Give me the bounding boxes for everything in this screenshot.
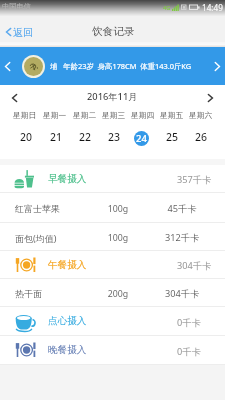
staticText: 22 bbox=[79, 130, 92, 144]
staticText: 2016年11月 bbox=[87, 90, 138, 103]
staticText: 饮食记录 bbox=[92, 25, 135, 38]
button[interactable]: 24 bbox=[128, 126, 157, 159]
staticText: 24 bbox=[136, 132, 147, 145]
button[interactable]: 21 bbox=[40, 126, 70, 159]
staticText: 热干面 bbox=[15, 288, 42, 299]
staticText: 星期一 bbox=[43, 111, 67, 121]
staticText: 0千卡 bbox=[177, 345, 201, 358]
staticText: 26 bbox=[195, 130, 208, 144]
staticText: 200g bbox=[97, 288, 139, 300]
staticText: 304千卡 bbox=[157, 287, 207, 300]
staticText: 午餐摄入 bbox=[48, 259, 87, 271]
button[interactable]: 26 bbox=[186, 126, 215, 159]
staticText: 0千卡 bbox=[177, 316, 201, 329]
button[interactable]: 上个月 bbox=[7, 91, 21, 105]
staticText: 100g bbox=[97, 203, 139, 215]
staticText: 20 bbox=[20, 130, 33, 144]
staticText: 星期二 bbox=[73, 111, 97, 121]
button[interactable]: 点心摄入 bbox=[0, 307, 225, 335]
button[interactable]: 22 bbox=[70, 126, 99, 159]
staticText: 100g bbox=[97, 232, 139, 244]
button[interactable]: 红富士苹果 bbox=[0, 193, 225, 222]
staticText: 星期三 bbox=[102, 111, 126, 121]
staticText: 45千卡 bbox=[157, 202, 207, 215]
staticText: 21 bbox=[50, 130, 63, 144]
button[interactable]: 23 bbox=[99, 126, 128, 159]
staticText: 埔 年龄23岁 身高178CM 体重143.0斤KG bbox=[50, 61, 192, 71]
button[interactable]: 下个月 bbox=[203, 91, 217, 105]
staticText: 星期日 bbox=[13, 111, 37, 121]
staticText: 晚餐摄入 bbox=[48, 344, 87, 356]
button[interactable]: 面包(均值) bbox=[0, 223, 225, 250]
button[interactable]: 午餐摄入 bbox=[0, 251, 225, 278]
button[interactable]: 返回 bbox=[0, 19, 41, 45]
button[interactable]: 晚餐摄入 bbox=[0, 336, 225, 364]
button[interactable]: 20 bbox=[10, 126, 40, 159]
staticText: 早餐摄入 bbox=[48, 173, 87, 185]
staticText: 304千卡 bbox=[177, 259, 212, 272]
staticText: 星期六 bbox=[189, 111, 213, 121]
button[interactable]: 早餐摄入 bbox=[0, 165, 225, 192]
staticText: 星期五 bbox=[160, 111, 184, 121]
staticText: 中国电信 bbox=[2, 2, 31, 11]
button[interactable]: 25 bbox=[157, 126, 186, 159]
staticText: 红富士苹果 bbox=[15, 203, 60, 214]
staticText: 点心摄入 bbox=[48, 315, 87, 327]
staticText: 357千卡 bbox=[177, 173, 212, 186]
staticText: 25 bbox=[166, 130, 179, 144]
button[interactable]: 埔 年龄23岁 身高178CM 体重143.0斤KG bbox=[0, 47, 225, 85]
staticText: 面包(均值) bbox=[15, 232, 57, 244]
staticText: 14:49 bbox=[202, 2, 223, 13]
staticText: 返回 bbox=[13, 26, 33, 39]
staticText: 23 bbox=[108, 130, 121, 144]
staticText: 4G bbox=[163, 4, 171, 11]
staticText: 312千卡 bbox=[157, 231, 207, 244]
staticText: 星期四 bbox=[131, 111, 155, 121]
button[interactable]: 热干面 bbox=[0, 279, 225, 306]
